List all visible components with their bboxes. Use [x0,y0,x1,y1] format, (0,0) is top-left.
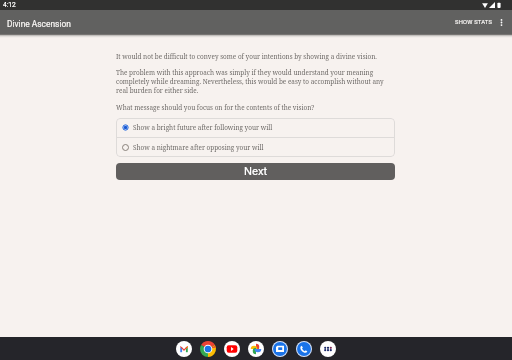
staticText: 4:12 [3,1,16,9]
button[interactable]: Show a bright future after following you… [116,118,395,137]
staticText: The problem with this approach was simpl… [116,68,395,95]
button[interactable]: Next [116,163,395,180]
button[interactable]: More options [495,11,507,34]
button[interactable]: Photos [248,341,264,357]
button[interactable]: Chrome [200,341,216,357]
staticText: Divine Ascension [7,19,71,29]
button[interactable]: Gmail [176,341,192,357]
staticText: SHOW STATS [455,19,493,26]
staticText: Next [244,165,268,178]
staticText: What message should you focus on for the… [116,103,315,112]
button[interactable]: SHOW STATS [451,14,495,31]
staticText: It would not be difficult to convey some… [116,52,377,61]
button[interactable]: All apps [320,341,336,357]
button[interactable]: YouTube [224,341,240,357]
button[interactable]: Phone [296,341,312,357]
button[interactable]: Messages [272,341,288,357]
button[interactable]: Show a nightmare after opposing your wil… [116,138,395,157]
staticText: Show a nightmare after opposing your wil… [133,143,264,152]
staticText: Show a bright future after following you… [133,123,273,132]
